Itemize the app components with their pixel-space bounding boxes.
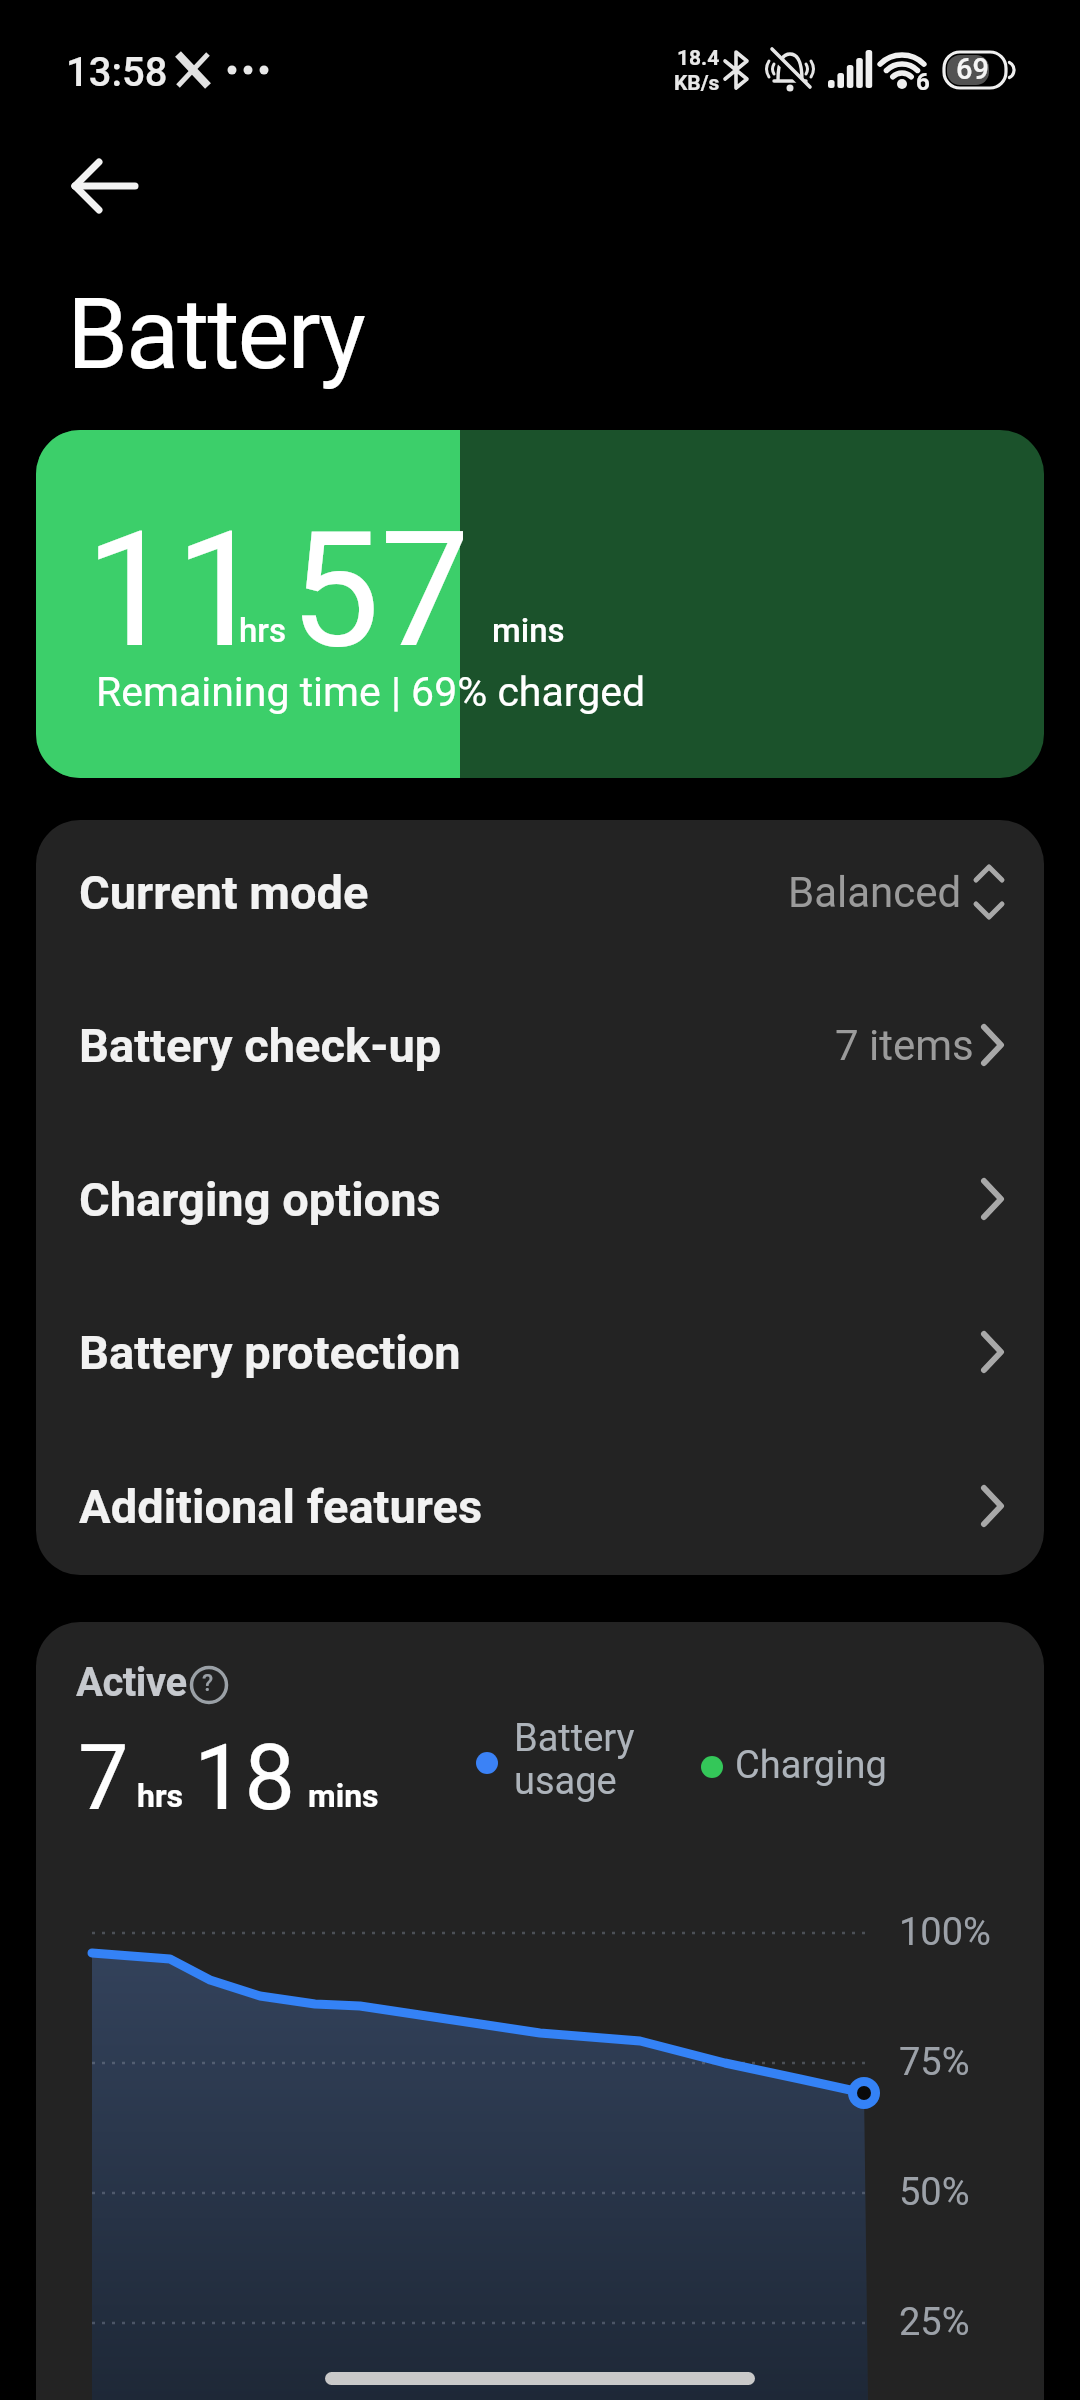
staticText: Battery (67, 277, 364, 392)
staticText: 6 (916, 68, 930, 96)
button[interactable] (60, 146, 150, 226)
staticText: 18 (194, 1726, 296, 1831)
button[interactable]: Current mode (36, 820, 1044, 969)
staticText: 7 items (835, 1021, 974, 1070)
staticText: Battery protection (79, 1325, 461, 1380)
staticText: KB/s (674, 71, 720, 96)
staticText: 69 (956, 52, 989, 86)
staticText: hrs (137, 1777, 184, 1815)
staticText: mins (492, 611, 565, 650)
button[interactable]: Charging options (36, 1122, 1044, 1276)
staticText: Battery (514, 1716, 635, 1761)
staticText: Charging options (79, 1172, 441, 1227)
button[interactable]: Battery check-up (36, 968, 1044, 1122)
button[interactable]: Battery protection (36, 1275, 1044, 1429)
staticText: 7 (78, 1726, 129, 1831)
button[interactable]: 11 (36, 430, 1044, 778)
staticText: Remaining time | 69% charged (96, 668, 646, 716)
staticText: 13:58 (66, 49, 168, 96)
staticText: 50% (899, 2170, 970, 2215)
staticText: mins (308, 1777, 379, 1815)
staticText: Current mode (79, 865, 369, 920)
staticText: 18.4 (677, 46, 720, 71)
staticText: 25% (899, 2300, 970, 2345)
staticText: Additional features (79, 1479, 483, 1534)
staticText: 57 (290, 497, 470, 685)
staticText: 75% (899, 2040, 970, 2085)
staticText: 11 (85, 497, 265, 685)
staticText: hrs (239, 611, 286, 650)
button[interactable]: Additional features (36, 1429, 1044, 1575)
staticText: Balanced (788, 868, 962, 917)
staticText: Active (76, 1659, 187, 1706)
staticText: ? (202, 1670, 214, 1697)
staticText: usage (514, 1759, 617, 1804)
staticText: 100% (899, 1910, 991, 1955)
staticText: Battery check-up (79, 1018, 442, 1073)
staticText: Charging (735, 1743, 887, 1788)
